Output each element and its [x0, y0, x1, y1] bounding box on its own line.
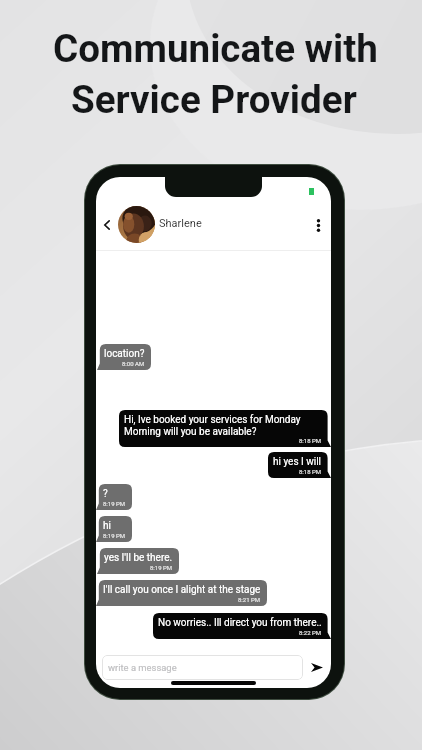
staticText: 8:18 PM [299, 437, 322, 444]
button[interactable]: Hi, Ive booked your services for Monday … [119, 410, 331, 447]
staticText: 8:21 PM [238, 596, 261, 603]
staticText: location? [104, 348, 145, 360]
staticText: yes I'll be there. [104, 552, 173, 564]
button[interactable]: No worries.. Ill direct you from there.. [153, 613, 331, 639]
button[interactable]: Back [97, 215, 117, 235]
staticText: write a message [108, 662, 177, 673]
button[interactable]: hi yes I will [268, 452, 331, 478]
staticText: 8:00 AM [122, 360, 145, 367]
button[interactable]: hi [96, 516, 132, 542]
staticText: 8:19 PM [103, 500, 126, 507]
staticText: hi yes I will [273, 456, 322, 468]
staticText: Communicate with [53, 26, 378, 71]
staticText: Sharlene [159, 217, 202, 230]
staticText: ? [103, 488, 108, 500]
button[interactable]: More options [308, 215, 328, 235]
staticText: I'll call you once I alight at the stage [103, 584, 261, 596]
staticText: 8:18 PM [299, 468, 322, 475]
button[interactable]: I'll call you once I alight at the stage [96, 580, 267, 606]
button[interactable]: location? [97, 344, 151, 370]
staticText: 8:19 PM [150, 564, 173, 571]
staticText: Hi, Ive booked your services for Monday … [124, 414, 322, 437]
staticText: No worries.. Ill direct you from there.. [158, 617, 322, 629]
staticText: 8:22 PM [299, 629, 322, 636]
button[interactable]: yes I'll be there. [97, 548, 179, 574]
staticText: Service Provider [71, 77, 357, 122]
button[interactable]: ? [96, 484, 132, 510]
staticText: 8:19 PM [103, 532, 126, 539]
button[interactable]: write a message [102, 655, 303, 680]
button[interactable]: Send [305, 655, 329, 679]
staticText: hi [103, 520, 111, 532]
